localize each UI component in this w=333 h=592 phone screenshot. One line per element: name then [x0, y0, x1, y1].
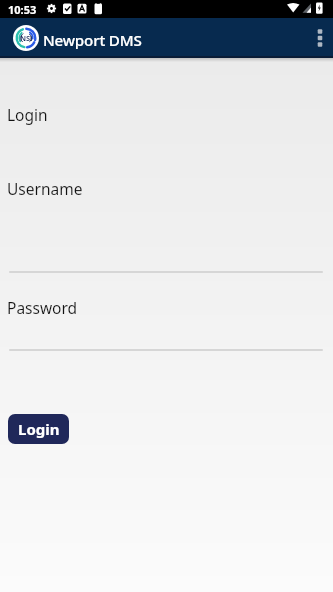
- staticText: Newport DMS: [43, 30, 142, 51]
- staticText: Username: [7, 178, 83, 199]
- button[interactable]: [293, 18, 333, 58]
- staticText: 10:53: [8, 2, 37, 17]
- staticText: Login: [7, 104, 48, 125]
- staticText: Login: [18, 419, 60, 439]
- staticText: NSi: [20, 33, 33, 43]
- button[interactable]: Login: [8, 414, 69, 444]
- staticText: Password: [7, 297, 78, 318]
